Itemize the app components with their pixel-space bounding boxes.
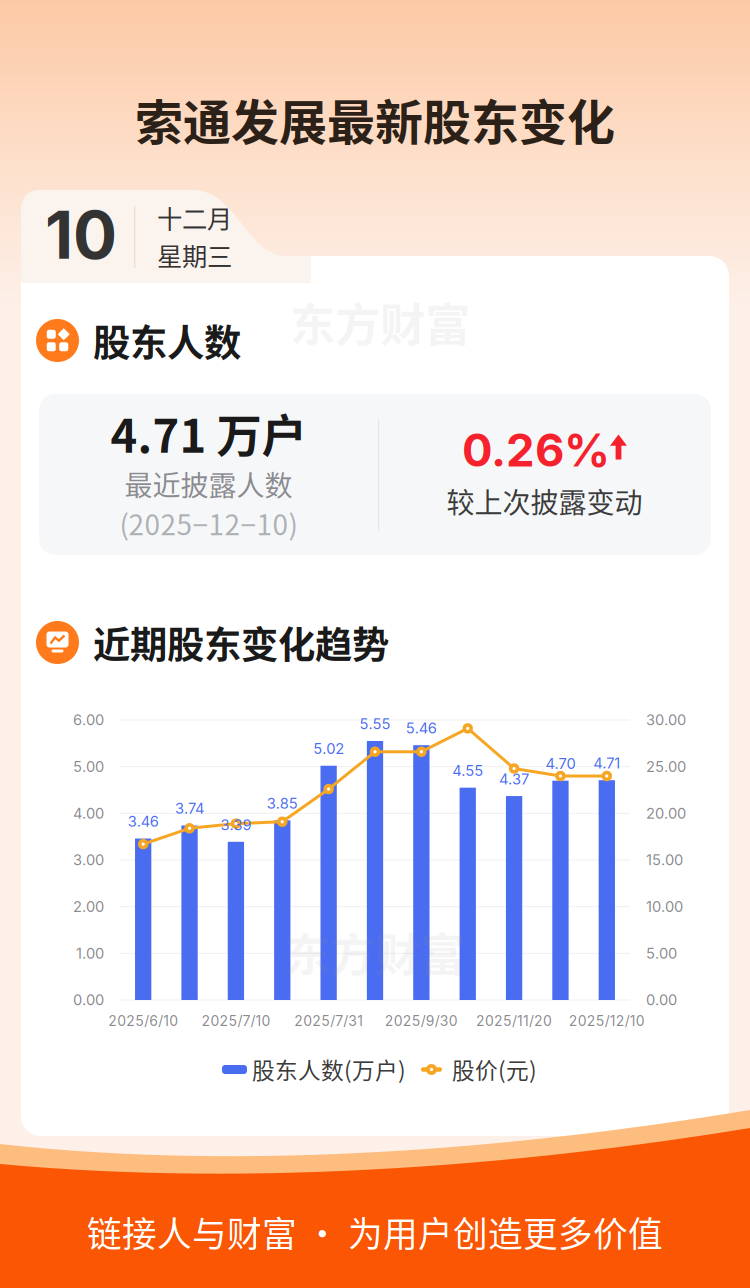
staticText: 2025/9/30 — [385, 1012, 458, 1029]
staticText: 索通发展最新股东变化 — [135, 84, 615, 154]
staticText: 20.00 — [646, 804, 686, 822]
staticText: 2025/12/10 — [569, 1012, 645, 1029]
staticText: 6.00 — [73, 711, 104, 729]
staticText: 10 — [45, 195, 117, 274]
staticText: 3.74 — [175, 800, 204, 817]
staticText: 5.55 — [359, 715, 390, 733]
staticText: 4.55 — [452, 762, 483, 779]
staticText: 2025/6/10 — [108, 1012, 178, 1029]
staticText: 3.00 — [73, 851, 104, 869]
staticText: 4.71 万户 — [110, 400, 306, 466]
staticText: (2025−12−10) — [119, 503, 297, 543]
staticText: 十二月 — [157, 199, 232, 236]
staticText: 4.71 — [593, 754, 620, 772]
staticText: 最近披露人数 — [124, 464, 292, 504]
staticText: 东方财富 — [285, 919, 465, 985]
staticText: 股东人数 — [93, 313, 241, 368]
staticText: 0.00 — [646, 991, 677, 1009]
staticText: 5.02 — [313, 740, 344, 758]
staticText: 星期三 — [157, 237, 232, 273]
staticText: 2025/7/31 — [294, 1012, 363, 1029]
staticText: 5.46 — [406, 719, 437, 737]
staticText: 15.00 — [646, 851, 683, 869]
staticText: 链接人与财富 · 为用户创造更多价值 — [87, 1207, 663, 1257]
staticText: 0.00 — [73, 991, 104, 1009]
staticText: 3.85 — [267, 794, 298, 812]
staticText: 4.37 — [499, 770, 529, 788]
staticText: 4.00 — [73, 804, 104, 822]
staticText: 0.26% — [462, 423, 610, 477]
staticText: 股价(元) — [452, 1053, 537, 1085]
staticText: 较上次披露变动 — [446, 481, 642, 521]
staticText: 30.00 — [646, 711, 686, 729]
staticText: 2.00 — [73, 898, 104, 915]
staticText: 4.70 — [545, 755, 575, 772]
staticText: 2025/11/20 — [476, 1012, 552, 1029]
staticText: 25.00 — [646, 758, 686, 775]
staticText: 5.00 — [646, 944, 677, 962]
staticText: 10.00 — [646, 898, 683, 915]
staticText: 近期股东变化趋势 — [93, 615, 389, 670]
staticText: 东方财富 — [290, 289, 470, 355]
staticText: 3.39 — [220, 816, 251, 834]
staticText: 3.46 — [128, 813, 159, 830]
staticText: 5.00 — [73, 758, 104, 775]
staticText: 股东人数(万户) — [252, 1053, 406, 1085]
staticText: 2025/7/10 — [201, 1012, 270, 1029]
staticText: 1.00 — [76, 944, 104, 962]
